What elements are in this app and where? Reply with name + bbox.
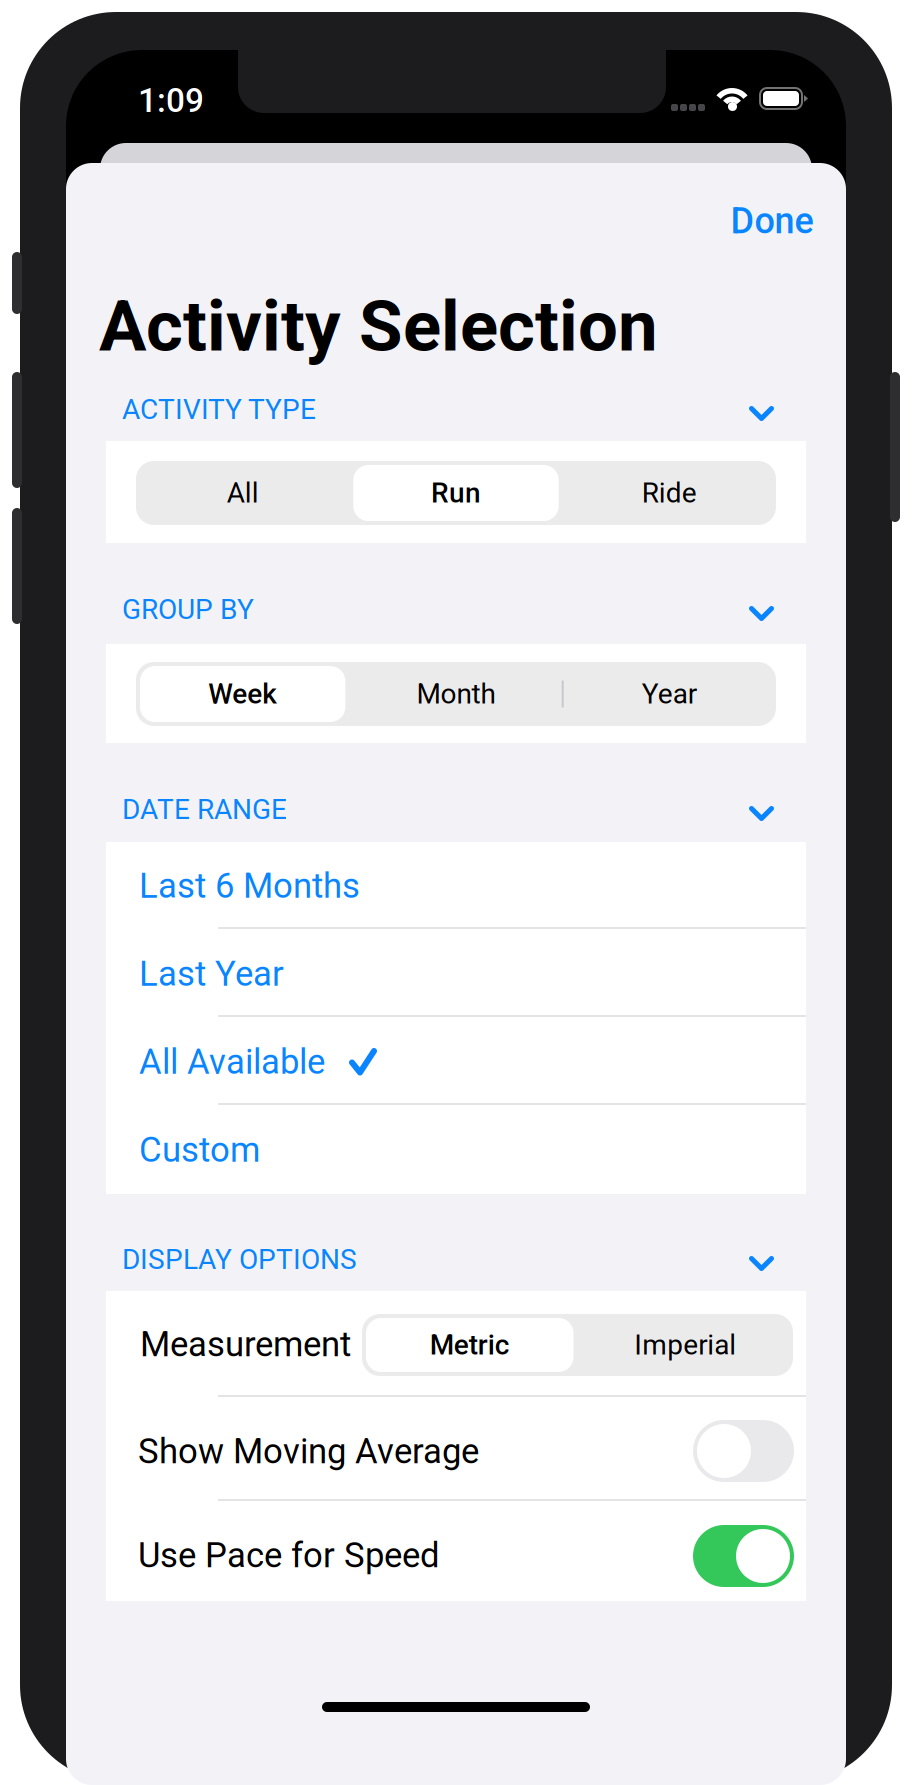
staticText: Year: [642, 678, 697, 710]
staticText: Week: [208, 678, 277, 710]
staticText: Metric: [430, 1329, 510, 1361]
staticText: DISPLAY OPTIONS: [122, 1243, 357, 1276]
button[interactable]: ACTIVITY TYPE: [122, 393, 788, 437]
staticText: Custom: [139, 1130, 260, 1170]
staticText: Use Pace for Speed: [138, 1535, 440, 1576]
staticText: Ride: [642, 477, 697, 509]
staticText: ACTIVITY TYPE: [122, 393, 316, 426]
staticText: Done: [730, 200, 813, 242]
button[interactable]: Custom: [106, 1106, 806, 1194]
staticText: Activity Selection: [99, 285, 658, 368]
button[interactable]: GROUP BY: [122, 593, 788, 637]
staticText: Imperial: [634, 1329, 736, 1361]
staticText: Run: [431, 477, 481, 509]
button[interactable]: All Available: [106, 1018, 806, 1106]
staticText: 1:09: [138, 81, 204, 120]
staticText: DATE RANGE: [122, 793, 287, 826]
staticText: All: [227, 477, 259, 509]
staticText: GROUP BY: [122, 593, 254, 626]
button[interactable]: Last 6 Months: [106, 842, 806, 930]
staticText: Last 6 Months: [139, 866, 360, 906]
button[interactable]: DISPLAY OPTIONS: [122, 1243, 788, 1287]
button[interactable]: DATE RANGE: [122, 793, 788, 837]
button[interactable]: Last Year: [106, 930, 806, 1018]
button[interactable]: Measurement: [106, 1291, 806, 1395]
button[interactable]: Use Pace for Speed: [106, 1499, 806, 1603]
staticText: All Available: [139, 1042, 325, 1082]
staticText: Month: [416, 678, 495, 710]
staticText: Measurement: [140, 1324, 351, 1365]
staticText: Last Year: [139, 954, 284, 994]
button[interactable]: Done: [716, 194, 828, 248]
button[interactable]: Show Moving Average: [106, 1395, 806, 1499]
staticText: Show Moving Average: [138, 1431, 479, 1472]
